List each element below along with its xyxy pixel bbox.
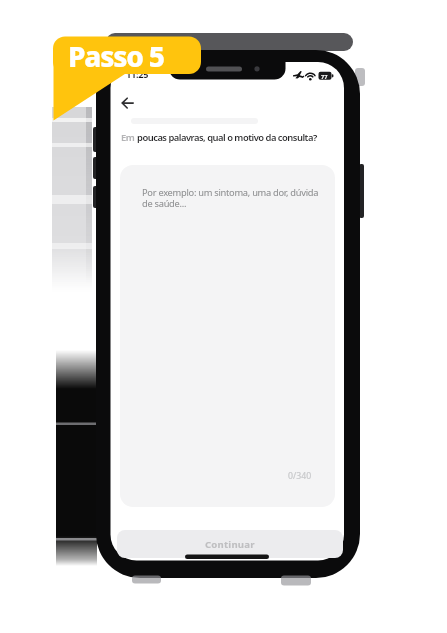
- staticText: poucas palavras, qual o motivo da consul…: [137, 131, 317, 144]
- button[interactable]: Passo 5: [53, 37, 201, 75]
- staticText: Em: [121, 131, 137, 144]
- button[interactable]: [115, 91, 139, 115]
- staticText: 77: [321, 73, 328, 81]
- staticText: Continuar: [205, 538, 255, 551]
- button[interactable]: Continuar: [117, 530, 343, 558]
- staticText: 11:25: [126, 68, 149, 80]
- button[interactable]: Por exemplo: um sintoma, uma dor, dúvida…: [120, 165, 335, 507]
- staticText: Por exemplo: um sintoma, uma dor, dúvida…: [142, 186, 319, 210]
- staticText: 0/340: [288, 470, 312, 482]
- staticText: Passo 5: [68, 37, 164, 75]
